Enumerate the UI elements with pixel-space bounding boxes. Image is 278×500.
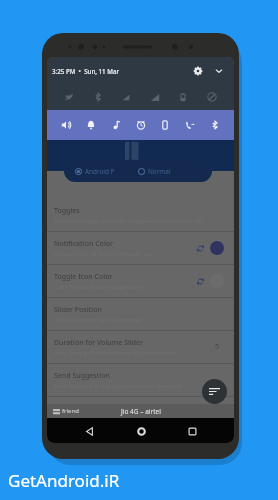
staticText: friend — [62, 407, 79, 415]
button[interactable]: Reset color — [194, 275, 206, 287]
button[interactable]: Android P — [64, 160, 138, 182]
staticText: Normal — [148, 167, 171, 176]
button[interactable]: Back — [79, 421, 99, 441]
staticText: Toggles — [54, 206, 80, 216]
staticText: Android P — [85, 167, 115, 176]
button[interactable]: Normal — [138, 160, 212, 182]
button[interactable]: Send Suggestion — [47, 364, 234, 397]
button[interactable]: Bluetooth off — [90, 89, 106, 105]
button[interactable]: Music — [108, 117, 124, 133]
button[interactable]: Alarm — [133, 117, 149, 133]
button[interactable]: Toggle Icon Color — [47, 265, 234, 298]
button[interactable]: Call — [182, 117, 198, 133]
button[interactable]: Volume — [58, 117, 74, 133]
button[interactable]: Send suggestion — [202, 379, 227, 404]
button[interactable]: Home — [131, 421, 151, 441]
button[interactable]: Expand — [211, 63, 226, 78]
staticText: 5 — [215, 342, 220, 352]
staticText: Send Suggestion — [54, 371, 110, 381]
staticText: Toggle Icon Color — [54, 272, 113, 282]
button[interactable]: Device — [157, 117, 173, 133]
staticText: 3:25 PM • Sun, 11 Mar — [52, 67, 120, 75]
button[interactable]: Bluetooth — [207, 117, 223, 133]
button[interactable]: Recents — [182, 421, 202, 441]
button[interactable]: Signal 1 — [118, 89, 134, 105]
button[interactable]: Duration for Volume Slider — [47, 331, 234, 364]
staticText: Notification Color — [54, 239, 114, 249]
button[interactable]: Notifications — [83, 117, 99, 133]
button[interactable]: Signal 2 — [147, 89, 163, 105]
button[interactable]: Battery — [175, 89, 191, 105]
button[interactable]: Toggles — [47, 199, 234, 232]
staticText: Slider Position — [54, 305, 102, 315]
button[interactable]: Wi-Fi off — [61, 89, 77, 105]
staticText: Duration for Volume Slider — [54, 338, 144, 348]
button[interactable]: Pick color — [210, 241, 224, 255]
button[interactable]: Do not disturb — [204, 89, 220, 105]
staticText: Jio 4G – airtel — [121, 407, 161, 416]
button[interactable]: Notification Color — [47, 232, 234, 265]
button[interactable]: Slider Position — [47, 298, 234, 331]
button[interactable]: Settings — [190, 63, 205, 78]
button[interactable]: Reset color — [194, 242, 206, 254]
staticText: GetAndroid.iR — [8, 469, 120, 492]
